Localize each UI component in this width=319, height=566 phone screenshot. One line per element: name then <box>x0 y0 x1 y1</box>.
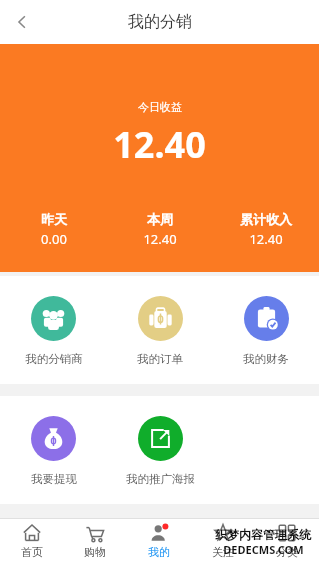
staticText: 我的财务 <box>243 352 289 366</box>
staticText: 我的 <box>148 545 170 559</box>
staticText: 累计收入 <box>240 211 292 227</box>
button[interactable]: 分类 <box>255 523 319 566</box>
staticText: 我的订单 <box>137 352 183 366</box>
staticText: 12.40 <box>249 230 283 248</box>
staticText: 我的推广海报 <box>126 472 195 486</box>
button[interactable]: 购物 <box>63 523 127 566</box>
staticText: 昨天 <box>41 211 67 227</box>
staticText: 织梦内容管理系统 <box>215 527 311 542</box>
staticText: 分类 <box>276 545 298 559</box>
button[interactable]: 本周 <box>107 211 213 248</box>
button[interactable]: 昨天 <box>0 211 107 248</box>
staticText: 购物 <box>84 545 106 559</box>
button[interactable]: Back <box>0 0 44 44</box>
button[interactable]: 我的 <box>127 523 191 566</box>
staticText: 我的分销商 <box>25 352 83 366</box>
button[interactable]: 我的分销商 <box>0 294 107 368</box>
staticText: 我的分销 <box>128 12 192 32</box>
staticText: 12.40 <box>113 120 206 169</box>
button[interactable]: 我要提现 <box>0 414 107 488</box>
button[interactable]: 我的财务 <box>213 294 319 368</box>
button[interactable]: 我的推广海报 <box>107 414 213 488</box>
staticText: 关注 <box>212 545 234 559</box>
staticText: 0.00 <box>41 230 67 248</box>
staticText: 今日收益 <box>138 100 182 114</box>
button[interactable]: 首页 <box>0 523 63 566</box>
staticText: 本周 <box>147 211 173 227</box>
staticText: 首页 <box>21 545 43 559</box>
button[interactable]: 我的订单 <box>107 294 213 368</box>
staticText: DEDECMS.COM <box>223 542 304 557</box>
button[interactable]: 关注 <box>191 523 255 566</box>
staticText: 12.40 <box>143 230 177 248</box>
staticText: 我要提现 <box>31 472 77 486</box>
button[interactable]: 累计收入 <box>213 211 319 248</box>
